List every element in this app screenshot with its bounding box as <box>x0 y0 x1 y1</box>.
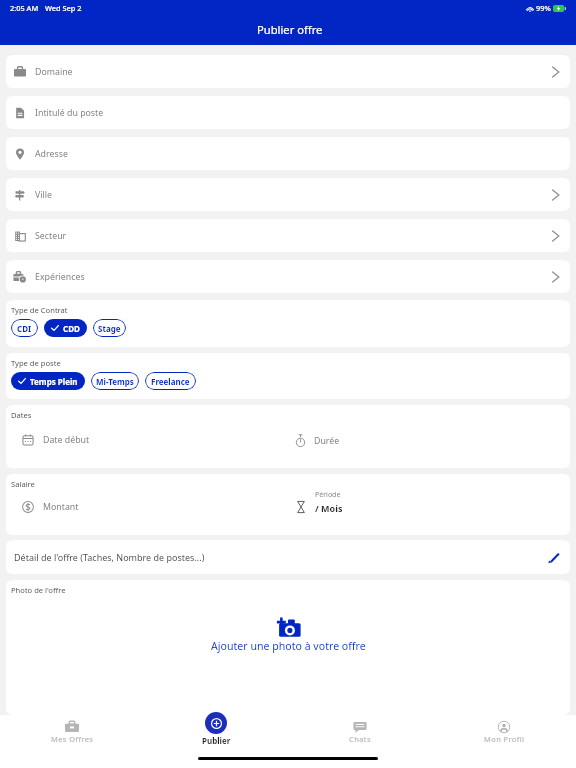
button[interactable]: Photo de l'offre <box>6 580 570 715</box>
staticText: Dates <box>11 410 32 420</box>
staticText: 2:05 AM <box>10 3 39 13</box>
button[interactable]: Freelance <box>145 372 196 390</box>
other: Modifier le détail <box>547 551 560 564</box>
staticText: Publier offre <box>257 22 323 37</box>
staticText: Montant <box>43 501 79 513</box>
button[interactable]: Intitulé du poste <box>6 96 570 129</box>
staticText: Publier <box>202 735 231 746</box>
staticText: CDD <box>63 323 80 334</box>
staticText: Ajouter une photo à votre offre <box>211 639 366 653</box>
button[interactable]: Durée <box>295 434 340 448</box>
staticText: Domaine <box>35 66 73 78</box>
staticText: Type de Contrat <box>11 305 68 315</box>
staticText: Wed Sep 2 <box>45 3 82 13</box>
staticText: Mon Profil <box>484 734 525 744</box>
button[interactable]: Temps Plein <box>11 372 85 390</box>
button[interactable]: Stage <box>93 319 126 337</box>
button[interactable]: Expériences <box>6 260 570 293</box>
button[interactable]: Ville <box>6 178 570 211</box>
button[interactable]: Publier <box>144 715 288 749</box>
staticText: Mi-Temps <box>96 376 134 387</box>
other: Domaine <box>549 66 561 78</box>
button[interactable]: Mon Profil <box>432 715 576 744</box>
staticText: Secteur <box>35 230 67 242</box>
staticText: Durée <box>314 435 340 447</box>
staticText: Salaire <box>11 479 35 489</box>
button[interactable]: Secteur <box>6 219 570 252</box>
staticText: Temps Plein <box>30 376 78 387</box>
staticText: Intitulé du poste <box>35 107 104 119</box>
staticText: Mes Offres <box>51 734 94 744</box>
button[interactable]: CDD <box>44 319 87 337</box>
button[interactable]: Chats <box>288 715 432 744</box>
other: Secteur <box>549 230 561 242</box>
other: Expériences <box>549 271 561 283</box>
staticText: Détail de l'offre (Taches, Nombre de pos… <box>14 551 205 563</box>
staticText: Période <box>315 490 341 500</box>
staticText: / Mois <box>315 502 343 514</box>
button[interactable]: Mes Offres <box>0 715 144 744</box>
staticText: 99% <box>536 3 551 13</box>
button[interactable]: Montant <box>22 501 281 513</box>
staticText: Type de poste <box>11 358 61 368</box>
button[interactable]: Domaine <box>6 55 570 88</box>
button[interactable]: Mi-Temps <box>91 372 139 390</box>
staticText: Photo de l'offre <box>11 585 66 595</box>
button[interactable]: Période <box>295 490 343 514</box>
staticText: Freelance <box>151 376 190 387</box>
staticText: CDI <box>17 323 32 334</box>
button[interactable]: Détail de l'offre (Taches, Nombre de pos… <box>6 540 570 574</box>
other: Ville <box>549 189 561 201</box>
staticText: Date début <box>43 434 90 446</box>
button[interactable]: Date début <box>22 434 281 446</box>
staticText: Expériences <box>35 271 85 283</box>
staticText: Adresse <box>35 148 68 160</box>
staticText: Chats <box>349 734 371 744</box>
button[interactable]: CDI <box>11 319 38 337</box>
staticText: Ville <box>35 189 53 201</box>
button[interactable]: Adresse <box>6 137 570 170</box>
staticText: Stage <box>98 323 121 334</box>
